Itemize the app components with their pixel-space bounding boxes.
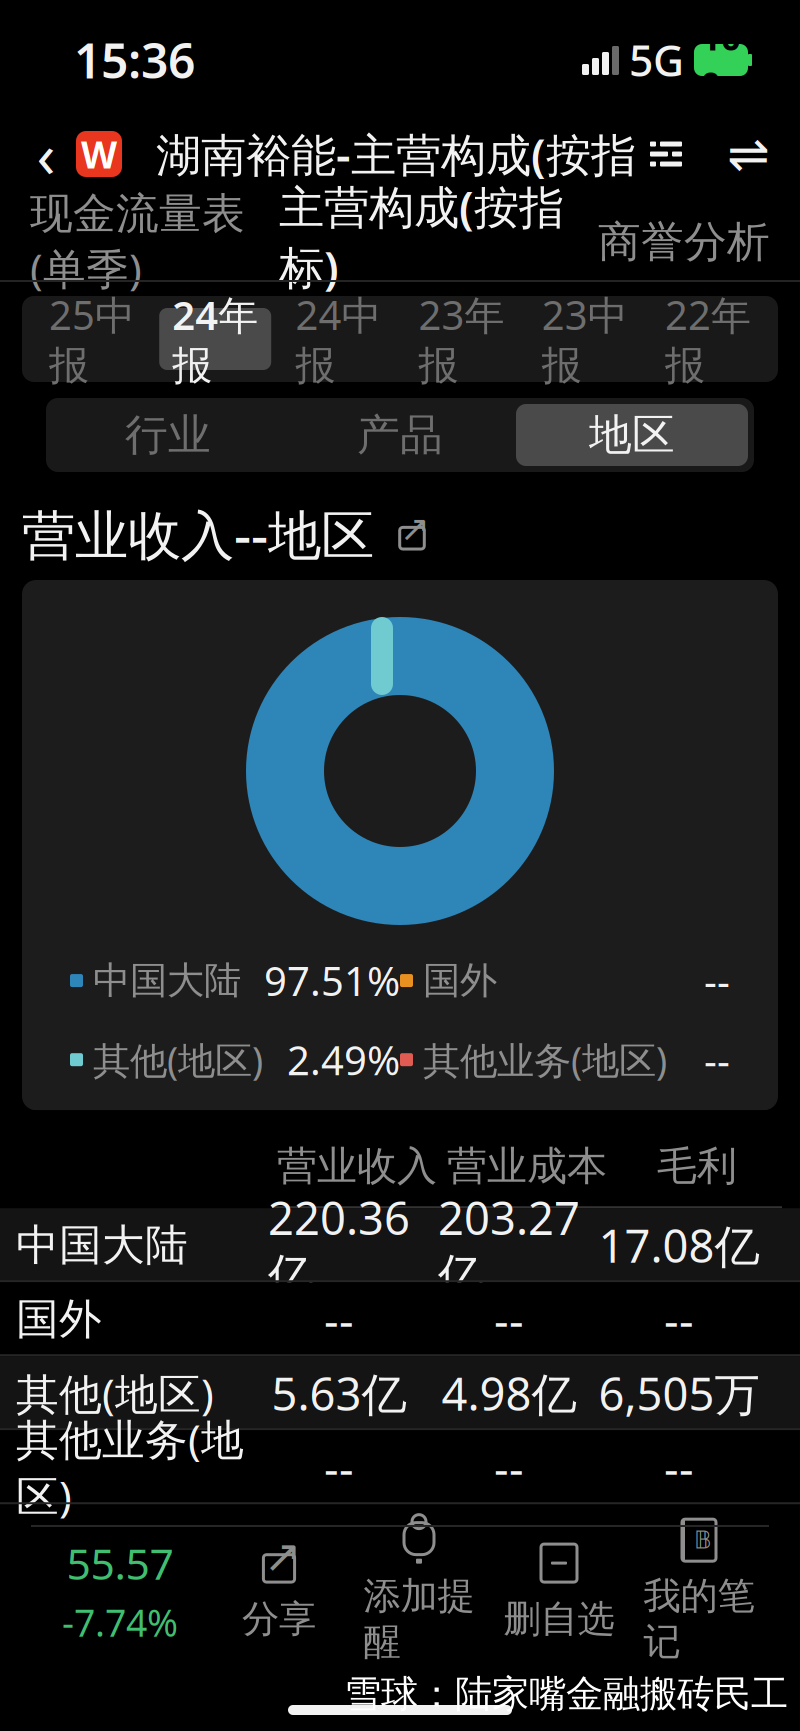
staticText: 23年报 xyxy=(419,288,505,390)
staticText: 其他(地区) xyxy=(93,1035,263,1084)
staticText: -- xyxy=(494,1289,524,1349)
button[interactable]: 其他(地区) xyxy=(0,1356,800,1430)
staticText: 产品 xyxy=(357,409,443,461)
staticText: 商誉分析 xyxy=(598,216,770,268)
staticText: 17.08亿 xyxy=(598,1215,759,1275)
staticText: 添加提醒 xyxy=(363,1573,474,1665)
staticText: 𝔹 xyxy=(694,1526,712,1554)
button[interactable]: 商誉分析 xyxy=(590,203,778,281)
staticText: -- xyxy=(324,1437,354,1497)
staticText: 97.51% xyxy=(264,954,400,1007)
staticText: W xyxy=(81,129,117,179)
staticText: -7.74% xyxy=(62,1597,178,1647)
staticText: 2.49% xyxy=(287,1033,400,1086)
staticText: 23中报 xyxy=(542,288,628,390)
button[interactable]: 现金流量表(单季) xyxy=(22,203,253,281)
staticText: 地区 xyxy=(589,409,675,461)
button[interactable]: Share chart xyxy=(392,514,432,554)
staticText: 其他业务(地区) xyxy=(16,1411,244,1524)
button[interactable]: ↗ xyxy=(209,1532,349,1650)
button[interactable]: 25中报 xyxy=(36,308,148,370)
staticText: 国外 xyxy=(16,1293,102,1345)
staticText: 主营构成(按指标) xyxy=(279,176,564,297)
button[interactable]: 24年报 xyxy=(159,308,271,370)
button[interactable]: 删自选 xyxy=(489,1532,629,1650)
staticText: 行业 xyxy=(125,409,211,461)
staticText: 营业成本 xyxy=(447,1142,607,1191)
staticText: 25中报 xyxy=(49,288,135,390)
staticText: 55.57 xyxy=(66,1535,173,1592)
staticText: 5.63亿 xyxy=(271,1363,406,1423)
staticText: 203.27亿 xyxy=(438,1187,580,1303)
button[interactable]: 𝔹 xyxy=(629,1532,769,1650)
staticText: 湖南裕能-主营构成(按指 xyxy=(156,124,636,184)
button[interactable]: 行业 xyxy=(52,404,284,466)
staticText: -- xyxy=(664,1289,694,1349)
button[interactable]: Filter xyxy=(646,134,686,174)
button[interactable]: 产品 xyxy=(284,404,516,466)
staticText: -- xyxy=(324,1289,354,1349)
staticText: -- xyxy=(494,1437,524,1497)
staticText: 15:36 xyxy=(74,28,195,92)
button[interactable]: 22年报 xyxy=(652,308,764,370)
staticText: 分享 xyxy=(242,1596,316,1642)
button[interactable]: 23中报 xyxy=(529,308,641,370)
staticText: 220.36亿 xyxy=(268,1187,410,1303)
button[interactable]: 主营构成(按指标) xyxy=(271,203,572,281)
staticText: 删自选 xyxy=(503,1596,614,1642)
staticText: 其他(地区) xyxy=(16,1365,214,1422)
staticText: 营业收入 xyxy=(277,1142,437,1191)
staticText: 24中报 xyxy=(295,288,381,390)
staticText: 100 xyxy=(701,14,741,106)
button[interactable]: 添加提醒 xyxy=(349,1532,489,1650)
button[interactable]: 23年报 xyxy=(406,308,518,370)
button[interactable]: 24中报 xyxy=(282,308,394,370)
staticText: 毛利 xyxy=(657,1142,737,1191)
staticText: 4.98亿 xyxy=(441,1363,576,1423)
staticText: ↗ xyxy=(400,508,430,549)
staticText: 6,505万 xyxy=(598,1363,759,1423)
staticText: ↗ xyxy=(264,1530,302,1582)
button[interactable]: App icon xyxy=(76,131,122,177)
button[interactable]: 其他业务(地区) xyxy=(0,1430,800,1504)
staticText: ⇌ xyxy=(727,125,769,183)
staticText: 雪球：陆家嘴金融搬砖民工 xyxy=(344,1671,788,1717)
staticText: 24年报 xyxy=(172,288,258,390)
staticText: 中国大陆 xyxy=(16,1219,188,1271)
button[interactable]: 国外 xyxy=(0,1282,800,1356)
staticText: 我的笔记 xyxy=(643,1573,754,1665)
button[interactable]: 中国大陆 xyxy=(0,1208,800,1282)
staticText: 5G xyxy=(629,32,684,88)
staticText: 营业收入--地区 xyxy=(22,499,374,569)
button[interactable]: 地区 xyxy=(516,404,748,466)
staticText: 22年报 xyxy=(665,288,751,390)
staticText: ‹ xyxy=(36,113,55,195)
button[interactable]: Back xyxy=(20,121,72,187)
staticText: -- xyxy=(664,1437,694,1497)
button[interactable]: Switch xyxy=(720,126,776,182)
staticText: -- xyxy=(704,954,730,1007)
staticText: 中国大陆 xyxy=(93,958,241,1003)
staticText: 国外 xyxy=(423,958,497,1003)
staticText: -- xyxy=(704,1033,730,1086)
staticText: 其他业务(地区) xyxy=(423,1035,667,1084)
staticText: 现金流量表(单季) xyxy=(30,187,245,297)
